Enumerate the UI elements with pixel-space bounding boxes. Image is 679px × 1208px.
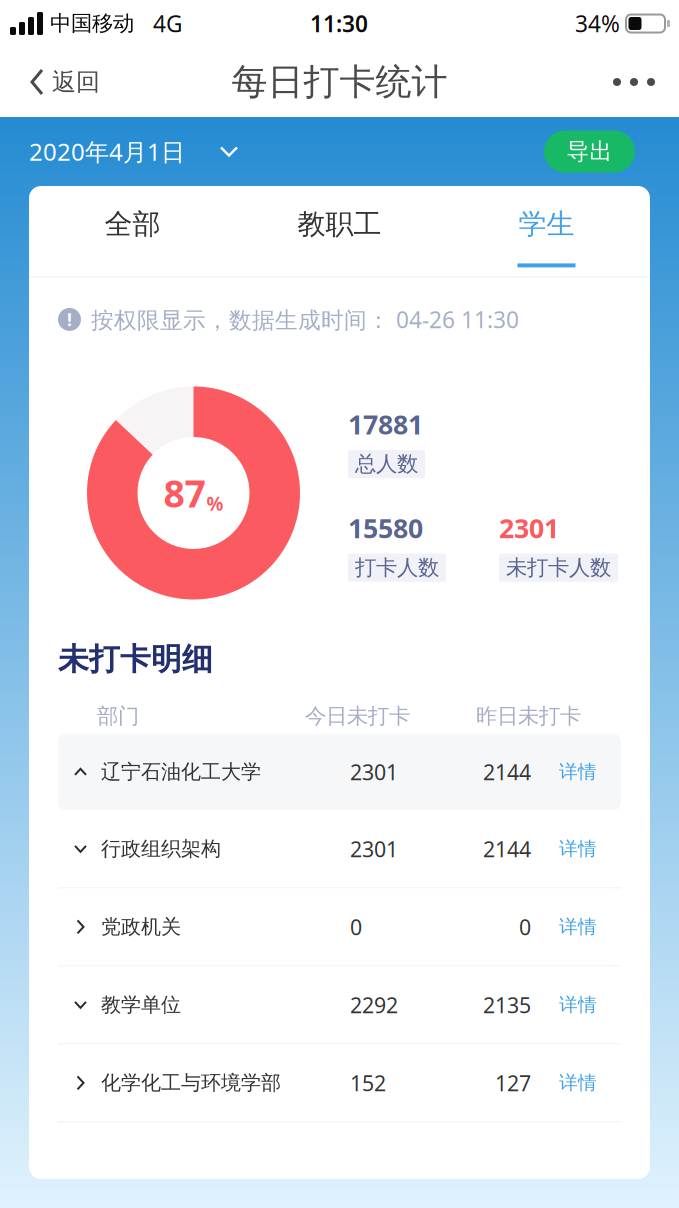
button[interactable]: 化学化工与环境学部	[58, 1044, 621, 1121]
staticText: 教学单位	[101, 993, 181, 1017]
staticText: !	[67, 308, 72, 331]
staticText: 2301	[350, 758, 398, 786]
staticText: 昨日未打卡	[476, 703, 581, 729]
staticText: 87	[163, 468, 205, 518]
button[interactable]: More options	[589, 47, 679, 117]
staticText: 详情	[559, 1071, 597, 1094]
button[interactable]: 返回	[0, 47, 120, 117]
staticText: 17881	[348, 406, 423, 442]
staticText: 行政组织架构	[101, 837, 221, 861]
staticText: 34%	[575, 8, 620, 38]
staticText: 总人数	[355, 451, 418, 477]
staticText: 2301	[350, 835, 398, 863]
staticText: 按权限显示，数据生成时间： 04-26 11:30	[91, 304, 519, 334]
staticText: 详情	[559, 837, 597, 860]
staticText: 学生	[518, 207, 574, 241]
button[interactable]: 学生	[443, 186, 650, 276]
staticText: 中国移动	[50, 10, 134, 37]
staticText: 2135	[483, 991, 531, 1019]
staticText: 党政机关	[101, 915, 181, 939]
button[interactable]: 教职工	[236, 186, 443, 276]
button[interactable]: 教学单位	[58, 966, 621, 1043]
staticText: 化学化工与环境学部	[101, 1071, 281, 1095]
staticText: 详情	[559, 993, 597, 1016]
staticText: 未打卡人数	[506, 554, 611, 581]
staticText: 4G	[153, 8, 183, 38]
staticText: 全部	[104, 207, 160, 241]
staticText: 152	[350, 1069, 386, 1097]
staticText: 详情	[559, 915, 597, 938]
staticText: %	[206, 491, 223, 516]
button[interactable]: 辽宁石油化工大学	[58, 733, 621, 810]
staticText: 辽宁石油化工大学	[101, 760, 261, 784]
button[interactable]: 2020年4月1日	[0, 123, 238, 180]
staticText: 2020年4月1日	[29, 136, 185, 167]
button[interactable]: 全部	[29, 186, 236, 276]
staticText: 未打卡明细	[58, 640, 213, 678]
staticText: 2144	[483, 835, 531, 863]
button[interactable]: 导出	[544, 130, 635, 172]
staticText: 2144	[483, 758, 531, 786]
staticText: 导出	[566, 138, 612, 165]
button[interactable]: 党政机关	[58, 888, 621, 965]
staticText: 打卡人数	[355, 554, 439, 581]
staticText: 教职工	[297, 207, 381, 241]
staticText: 返回	[52, 67, 100, 97]
staticText: 0	[519, 913, 531, 941]
staticText: 今日未打卡	[305, 703, 410, 729]
staticText: 部门	[97, 703, 139, 729]
staticText: 0	[350, 913, 362, 941]
staticText: 127	[495, 1069, 531, 1097]
staticText: 11:30	[310, 8, 368, 38]
staticText: 每日打卡统计	[231, 60, 447, 104]
staticText: 详情	[559, 760, 597, 783]
staticText: 2301	[499, 510, 559, 545]
staticText: 15580	[348, 510, 423, 545]
staticText: 2292	[350, 991, 398, 1019]
button[interactable]: 行政组织架构	[58, 810, 621, 887]
